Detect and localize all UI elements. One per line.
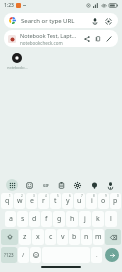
button[interactable]: Enter (105, 248, 119, 262)
staticText: e (30, 196, 34, 206)
button[interactable]: e (26, 193, 37, 209)
button[interactable]: Share (81, 33, 92, 44)
button[interactable]: s (17, 211, 28, 227)
staticText: a (9, 214, 13, 224)
staticText: 3 (33, 194, 35, 198)
button[interactable]: Themes (88, 179, 100, 191)
staticText: GIF (43, 183, 49, 188)
staticText: Search or type URL (21, 17, 75, 25)
staticText: 6 (69, 194, 71, 198)
button[interactable]: Clipboard (55, 179, 67, 191)
staticText: g (57, 214, 62, 224)
button[interactable]: v (57, 229, 68, 245)
button[interactable]: f (41, 211, 52, 227)
staticText: h (70, 214, 75, 224)
button[interactable]: k (92, 211, 104, 227)
staticText: m (95, 232, 102, 242)
staticText: d (32, 214, 37, 224)
staticText: t (54, 196, 57, 206)
staticText: x (36, 232, 40, 242)
staticText: notebookc... (7, 65, 28, 70)
button[interactable]: l (105, 211, 117, 227)
staticText: notebookcheck.com (20, 40, 63, 46)
staticText: Notebook Test, Laptop... (20, 32, 79, 39)
button[interactable]: d (29, 211, 40, 227)
staticText: z (23, 232, 27, 242)
button[interactable]: Keyboard modes (6, 179, 18, 191)
button[interactable]: a (5, 211, 16, 227)
staticText: n (84, 232, 89, 242)
staticText: j (84, 214, 86, 224)
button[interactable]: Notebook Test, Laptop... (4, 30, 118, 47)
button[interactable]: y (62, 193, 73, 209)
staticText: 4 (45, 194, 47, 198)
staticText: 9 (105, 194, 107, 198)
staticText: o (101, 196, 106, 206)
button[interactable]: Voice input (104, 179, 116, 191)
button[interactable]: b (69, 229, 80, 245)
button[interactable]: x (32, 229, 44, 245)
button[interactable]: h (66, 211, 78, 227)
staticText: 1:23 (4, 2, 14, 9)
staticText: i (91, 196, 93, 206)
button[interactable]: GIF (39, 179, 51, 191)
staticText: 0 (117, 194, 119, 198)
button[interactable]: Edit (103, 33, 114, 44)
button[interactable]: z (19, 229, 31, 245)
staticText: l (110, 214, 112, 224)
button[interactable]: m (93, 229, 104, 245)
staticText: 1 (9, 194, 11, 198)
staticText: f (45, 214, 48, 224)
button[interactable]: Stickers (23, 179, 35, 191)
button[interactable]: p (110, 193, 121, 209)
button[interactable]: / (18, 247, 29, 263)
button[interactable]: Settings (71, 179, 83, 191)
staticText: / (22, 251, 25, 259)
button[interactable]: r (38, 193, 49, 209)
staticText: u (77, 196, 82, 206)
button[interactable]: u (74, 193, 85, 209)
staticText: s (21, 214, 25, 224)
button[interactable]: Backspace (105, 229, 121, 245)
button[interactable]: Emoji (30, 247, 41, 263)
button[interactable]: o (98, 193, 109, 209)
staticText: c (49, 232, 53, 242)
staticText: v (61, 232, 65, 242)
button[interactable]: Voice search (90, 16, 100, 26)
button[interactable]: Google Lens (103, 16, 113, 26)
staticText: 2 (21, 194, 23, 198)
staticText: k (96, 214, 100, 224)
staticText: w (17, 196, 23, 206)
button[interactable]: Copy link (92, 33, 103, 44)
button[interactable]: i (86, 193, 97, 209)
staticText: b (72, 232, 77, 242)
button[interactable]: t (50, 193, 61, 209)
staticText: 5 (57, 194, 59, 198)
button[interactable]: q (1, 193, 13, 209)
button[interactable]: w (14, 193, 25, 209)
button[interactable]: g (53, 211, 65, 227)
button[interactable]: notebookc... (6, 52, 28, 71)
button[interactable]: ?123 (1, 247, 17, 263)
staticText: y (66, 196, 70, 206)
staticText: ?123 (4, 252, 14, 258)
button[interactable]: Shift (1, 229, 18, 245)
staticText: 7 (81, 194, 83, 198)
staticText: q (5, 196, 10, 206)
staticText: 8 (93, 194, 95, 198)
button[interactable]: . (91, 247, 102, 263)
button[interactable]: Search or type URL (4, 13, 118, 28)
staticText: . (96, 251, 98, 259)
staticText: p (113, 196, 118, 206)
button[interactable]: j (79, 211, 91, 227)
staticText: r (42, 196, 45, 206)
button[interactable]: c (45, 229, 56, 245)
button[interactable]: n (81, 229, 92, 245)
